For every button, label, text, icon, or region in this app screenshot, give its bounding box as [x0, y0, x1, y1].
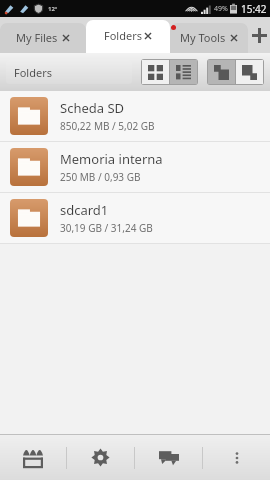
staticText: 30,19 GB / 31,24 GB: [60, 221, 153, 235]
button[interactable]: Scheda SD: [0, 91, 270, 141]
staticText: My Tools: [180, 30, 226, 45]
button[interactable]: More options: [203, 435, 270, 480]
staticText: Memoria interna: [60, 150, 163, 168]
staticText: 12°: [48, 5, 58, 13]
button[interactable]: Messages: [135, 435, 202, 480]
button[interactable]: New tab: [248, 17, 270, 53]
staticText: 850,22 MB / 5,02 GB: [60, 119, 155, 133]
staticText: Folders: [104, 28, 142, 43]
button[interactable]: Market: [0, 435, 66, 480]
button[interactable]: Memoria interna: [0, 142, 270, 192]
staticText: 15:42: [241, 2, 267, 16]
staticText: My Files: [16, 30, 58, 45]
staticText: 49%: [214, 4, 228, 14]
button[interactable]: My Tools: [170, 23, 248, 53]
button[interactable]: Grid view: [142, 60, 169, 84]
staticText: Folders: [14, 65, 52, 80]
button[interactable]: sdcard1: [0, 193, 270, 243]
button[interactable]: Dual pane: [236, 60, 263, 84]
staticText: sdcard1: [60, 201, 109, 219]
button[interactable]: List view: [170, 60, 197, 84]
button[interactable]: Settings: [67, 435, 134, 480]
staticText: Scheda SD: [60, 99, 125, 117]
button[interactable]: Folders: [6, 60, 132, 84]
button[interactable]: Folders: [86, 20, 170, 53]
button[interactable]: My Files: [0, 23, 86, 53]
button[interactable]: Single pane: [208, 60, 235, 84]
staticText: 250 MB / 0,93 GB: [60, 170, 141, 184]
